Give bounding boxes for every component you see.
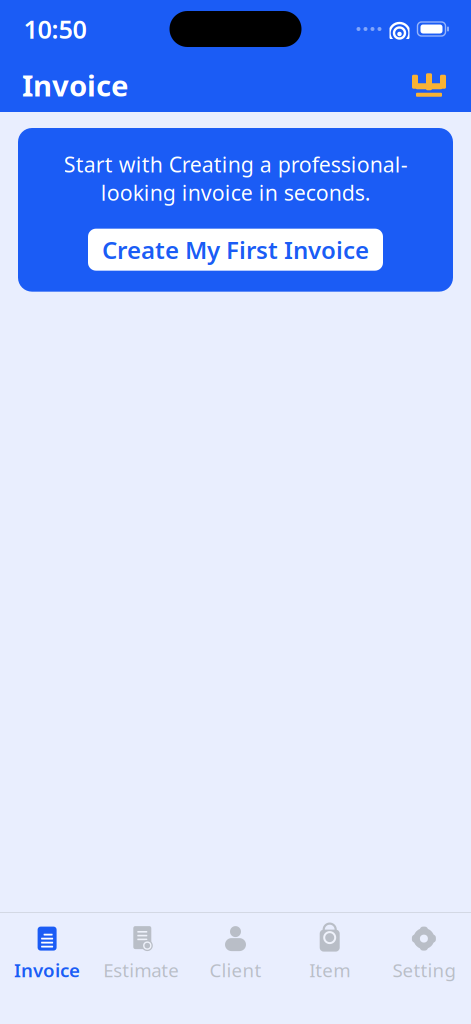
staticText: Client [209,958,261,982]
staticText: Invoice [22,65,129,104]
button[interactable]: Setting [377,914,471,990]
staticText: Estimate [103,958,179,982]
button[interactable]: Item [283,914,377,990]
button[interactable]: Create My First Invoice [88,229,383,271]
button[interactable]: Client [188,914,283,990]
staticText: 10:50 [23,12,86,46]
staticText: Create My First Invoice [102,234,369,266]
button[interactable]: Upgrade to Premium [409,67,449,103]
staticText: Start with Creating a professional-looki… [63,150,407,207]
staticText: Item [309,958,350,982]
staticText: Invoice [14,958,80,982]
staticText: Setting [392,958,455,982]
button[interactable]: Estimate [94,914,188,990]
button[interactable]: Invoice [0,914,94,990]
